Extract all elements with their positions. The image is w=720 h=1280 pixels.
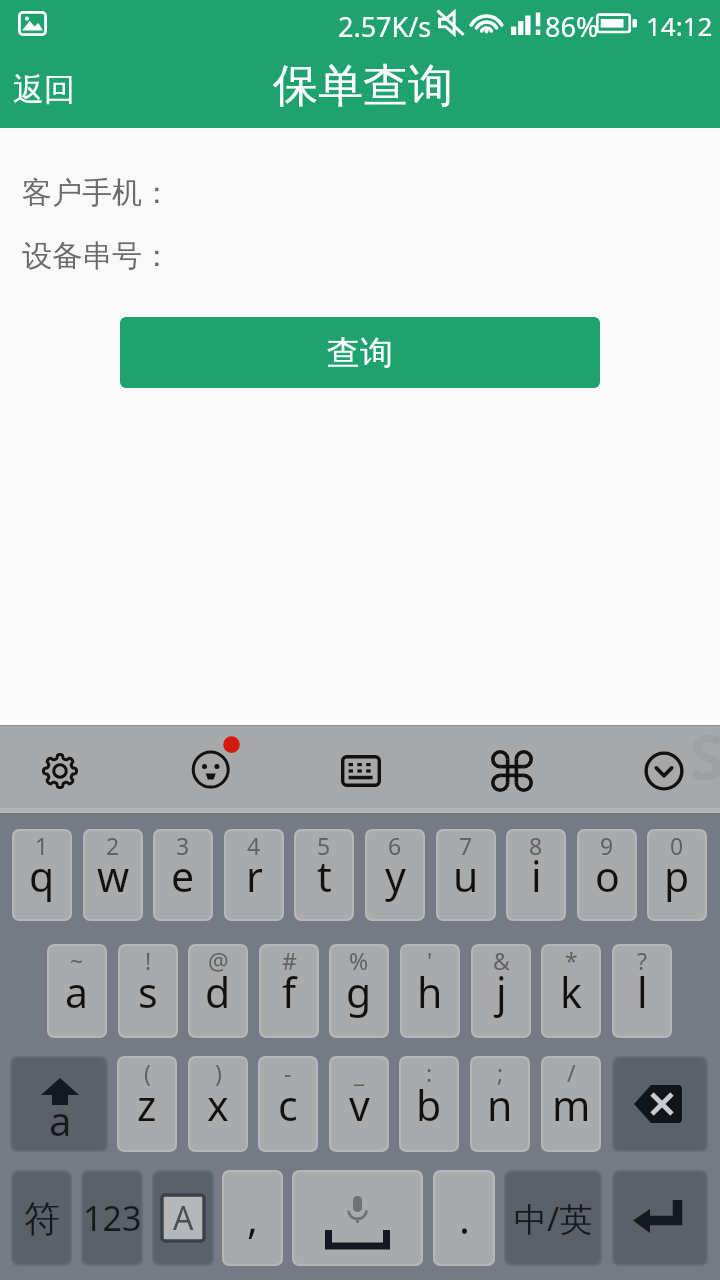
button[interactable]: 返回 bbox=[0, 50, 88, 128]
button[interactable]: Emoji bbox=[176, 726, 246, 816]
staticText: 86% bbox=[545, 8, 599, 45]
staticText: k bbox=[560, 964, 582, 1020]
staticText: s bbox=[138, 964, 158, 1020]
button[interactable]: * bbox=[543, 946, 599, 1036]
button[interactable]: A bbox=[154, 1172, 212, 1264]
button[interactable] bbox=[614, 1058, 706, 1150]
staticText: ' bbox=[427, 946, 433, 976]
staticText: 9 bbox=[600, 831, 614, 861]
staticText: p bbox=[664, 848, 690, 904]
staticText: - bbox=[284, 1058, 292, 1088]
button[interactable]: 符 bbox=[13, 1172, 70, 1264]
staticText: v bbox=[349, 1077, 370, 1133]
button[interactable]: % bbox=[331, 946, 387, 1036]
staticText: d bbox=[205, 964, 231, 1020]
staticText: 中/英 bbox=[514, 1196, 593, 1241]
staticText: S bbox=[690, 714, 720, 798]
staticText: ? bbox=[637, 946, 647, 976]
staticText: t bbox=[317, 848, 332, 904]
button[interactable]: Keyboard layout bbox=[326, 726, 396, 816]
staticText: h bbox=[417, 964, 443, 1020]
staticText: 123 bbox=[83, 1195, 141, 1241]
staticText: a bbox=[49, 1093, 72, 1147]
button[interactable]: Settings bbox=[25, 726, 95, 816]
button[interactable]: 2 bbox=[85, 831, 141, 919]
button[interactable]: 9 bbox=[579, 831, 635, 919]
button[interactable]: 7 bbox=[438, 831, 494, 919]
staticText: f bbox=[282, 964, 297, 1020]
staticText: u bbox=[453, 848, 479, 904]
button[interactable] bbox=[294, 1172, 421, 1264]
staticText: 保单查询 bbox=[273, 58, 453, 115]
button[interactable]: 1 bbox=[14, 831, 70, 919]
button[interactable]: / bbox=[543, 1058, 599, 1150]
button[interactable]: ( bbox=[119, 1058, 175, 1150]
button[interactable]: & bbox=[473, 946, 529, 1036]
staticText: z bbox=[137, 1077, 157, 1133]
staticText: i bbox=[531, 848, 542, 904]
staticText: 6 bbox=[388, 831, 402, 861]
staticText: . bbox=[459, 1190, 470, 1246]
staticText: 客户手机： bbox=[22, 174, 172, 212]
staticText: 8 bbox=[529, 831, 543, 861]
button[interactable] bbox=[614, 1172, 706, 1264]
staticText: 5 bbox=[317, 831, 331, 861]
staticText: @ bbox=[208, 946, 229, 976]
staticText: & bbox=[493, 946, 510, 976]
staticText: 符 bbox=[24, 1196, 60, 1241]
staticText: 1 bbox=[35, 831, 49, 861]
button[interactable]: ! bbox=[120, 946, 176, 1036]
staticText: * bbox=[565, 946, 578, 976]
button[interactable]: ? bbox=[614, 946, 670, 1036]
staticText: q bbox=[29, 848, 55, 904]
staticText: ! bbox=[145, 946, 152, 976]
button[interactable]: 中/英 bbox=[506, 1172, 600, 1264]
staticText: 查询 bbox=[327, 332, 393, 374]
button[interactable]: ~ bbox=[49, 946, 105, 1036]
button[interactable]: ; bbox=[472, 1058, 528, 1150]
staticText: _ bbox=[354, 1058, 365, 1088]
button[interactable]: . bbox=[435, 1172, 493, 1264]
staticText: o bbox=[595, 848, 620, 904]
staticText: 2.57K/s bbox=[338, 8, 432, 45]
staticText: 返回 bbox=[13, 70, 75, 109]
staticText: ; bbox=[497, 1058, 504, 1088]
staticText: ) bbox=[215, 1058, 222, 1088]
button[interactable]: 4 bbox=[226, 831, 282, 919]
button[interactable]: 6 bbox=[367, 831, 423, 919]
staticText: b bbox=[416, 1077, 442, 1133]
button[interactable]: Hide keyboard bbox=[629, 726, 699, 816]
button[interactable]: _ bbox=[331, 1058, 387, 1150]
button[interactable]: 0 bbox=[649, 831, 705, 919]
staticText: j bbox=[496, 964, 507, 1020]
staticText: e bbox=[171, 848, 195, 904]
button[interactable]: ) bbox=[190, 1058, 246, 1150]
staticText: a bbox=[65, 964, 89, 1020]
staticText: l bbox=[637, 964, 648, 1020]
button[interactable]: : bbox=[401, 1058, 457, 1150]
staticText: ( bbox=[144, 1058, 151, 1088]
staticText: c bbox=[278, 1077, 298, 1133]
button[interactable]: ' bbox=[402, 946, 458, 1036]
button[interactable]: 123 bbox=[83, 1172, 141, 1264]
button[interactable]: , bbox=[224, 1172, 281, 1264]
button[interactable]: @ bbox=[190, 946, 246, 1036]
staticText: m bbox=[552, 1077, 591, 1133]
button[interactable]: 5 bbox=[296, 831, 352, 919]
button[interactable]: 查询 bbox=[120, 317, 600, 388]
staticText: g bbox=[346, 964, 372, 1020]
staticText: 4 bbox=[247, 831, 261, 861]
button[interactable]: a bbox=[12, 1058, 106, 1150]
staticText: w bbox=[97, 848, 130, 904]
staticText: : bbox=[426, 1058, 433, 1088]
button[interactable]: Shortcuts bbox=[477, 726, 547, 816]
button[interactable]: - bbox=[260, 1058, 316, 1150]
staticText: ~ bbox=[70, 946, 84, 976]
button[interactable]: 8 bbox=[508, 831, 564, 919]
staticText: 0 bbox=[670, 831, 684, 861]
button[interactable]: # bbox=[261, 946, 317, 1036]
button[interactable]: 3 bbox=[155, 831, 211, 919]
staticText: 7 bbox=[459, 831, 473, 861]
staticText: # bbox=[282, 946, 297, 976]
staticText: r bbox=[246, 848, 263, 904]
